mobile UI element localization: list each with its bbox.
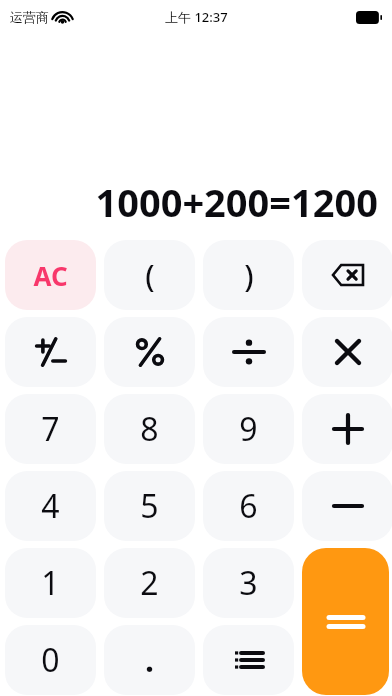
- button[interactable]: Backspace: [302, 240, 392, 310]
- staticText: 9: [239, 407, 258, 451]
- staticText: 运营商: [10, 9, 49, 25]
- staticText: 1000+200=1200: [95, 176, 378, 228]
- staticText: .: [145, 638, 154, 682]
- staticText: ): [244, 255, 254, 296]
- button[interactable]: 6: [203, 471, 294, 541]
- button[interactable]: AC: [5, 240, 96, 310]
- button[interactable]: Divide: [203, 317, 294, 387]
- staticText: 8: [140, 407, 159, 451]
- staticText: 0: [41, 638, 60, 682]
- staticText: 3: [239, 561, 258, 605]
- staticText: 7: [41, 407, 60, 451]
- button[interactable]: Plus: [302, 394, 392, 464]
- button[interactable]: 8: [104, 394, 195, 464]
- button[interactable]: 1: [5, 548, 96, 618]
- staticText: 6: [239, 484, 258, 528]
- button[interactable]: 3: [203, 548, 294, 618]
- button[interactable]: Percent: [104, 317, 195, 387]
- button[interactable]: Minus: [302, 471, 392, 541]
- button[interactable]: .: [104, 625, 195, 695]
- button[interactable]: Plus minus: [5, 317, 96, 387]
- button[interactable]: 7: [5, 394, 96, 464]
- button[interactable]: 4: [5, 471, 96, 541]
- staticText: 1: [41, 561, 60, 605]
- button[interactable]: History: [203, 625, 294, 695]
- staticText: 上午 12:37: [165, 8, 228, 26]
- button[interactable]: 5: [104, 471, 195, 541]
- button[interactable]: 0: [5, 625, 96, 695]
- staticText: (: [145, 255, 155, 296]
- button[interactable]: 9: [203, 394, 294, 464]
- staticText: 2: [140, 561, 159, 605]
- button[interactable]: (: [104, 240, 195, 310]
- staticText: 4: [41, 484, 60, 528]
- staticText: 5: [140, 484, 159, 528]
- button[interactable]: Equals: [302, 548, 389, 695]
- staticText: AC: [33, 258, 68, 293]
- button[interactable]: 2: [104, 548, 195, 618]
- button[interactable]: Multiply: [302, 317, 392, 387]
- button[interactable]: ): [203, 240, 294, 310]
